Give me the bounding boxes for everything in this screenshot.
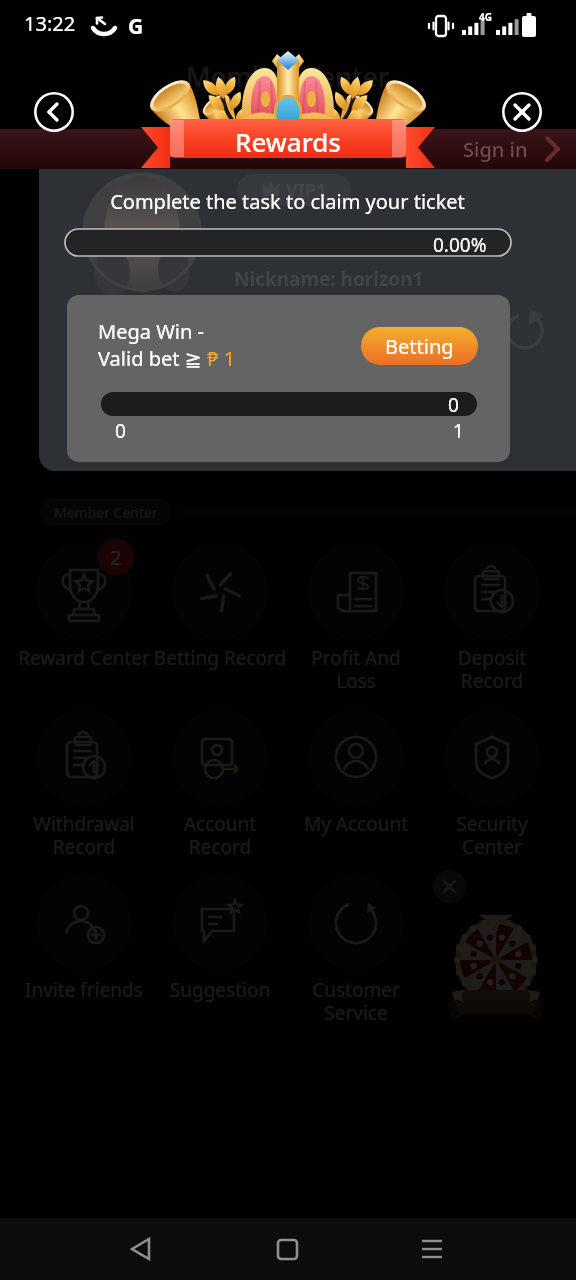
staticText: Invite friends	[16, 977, 152, 1003]
staticText: Customer Service	[288, 977, 424, 1026]
staticText: Mega Win -	[98, 318, 204, 345]
staticText: Reward Center	[16, 645, 152, 671]
staticText: Betting	[385, 333, 454, 360]
staticText: Withdrawal Record	[16, 811, 152, 860]
button[interactable]: Close	[502, 92, 542, 132]
button[interactable]: Withdrawal Record	[16, 709, 152, 861]
button[interactable]: Recent apps	[402, 1218, 576, 1280]
staticText: Member Center	[54, 503, 158, 522]
staticText: 0	[448, 392, 459, 416]
staticText: VIP1	[286, 178, 327, 203]
button[interactable]: Betting	[361, 327, 478, 365]
staticText: 2	[110, 544, 122, 571]
staticText: Valid bet ≧	[98, 345, 207, 372]
staticText: 0	[115, 418, 126, 444]
staticText: 1	[453, 418, 464, 444]
staticText: Complete the task to claim your ticket	[110, 188, 465, 215]
button[interactable]: Profit And Loss	[288, 543, 424, 695]
button[interactable]: Sign in	[0, 129, 576, 169]
button[interactable]: Customer Service	[288, 875, 424, 1027]
button[interactable]: Invite friends	[16, 875, 152, 1027]
staticText: Suggestion	[152, 977, 288, 1003]
staticText: Member Center	[186, 58, 390, 95]
button[interactable]: Home	[258, 1218, 576, 1280]
staticText: Security Center	[424, 811, 560, 860]
button[interactable]: Back	[113, 1218, 576, 1280]
staticText: G	[128, 12, 144, 41]
button[interactable]: Suggestion	[152, 875, 288, 1027]
staticText: ₱ 1	[207, 345, 236, 372]
button[interactable]: Betting Record	[152, 543, 288, 695]
button[interactable]: Lucky wheel	[450, 910, 546, 1022]
staticText: 4G	[479, 10, 492, 24]
button[interactable]: Deposit Record	[424, 543, 560, 695]
staticText: Betting Record	[152, 645, 288, 671]
button[interactable]: Back	[34, 92, 74, 132]
staticText: My Account	[288, 811, 424, 837]
staticText: Profit And Loss	[288, 645, 424, 694]
staticText: Rewards	[0, 124, 576, 159]
staticText: 13:22	[24, 10, 76, 37]
button[interactable]: Close wheel	[433, 870, 466, 903]
staticText: 0.00%	[433, 232, 487, 258]
button[interactable]: My Account	[288, 709, 424, 861]
staticText: Sign in	[463, 136, 528, 163]
staticText: Deposit Record	[424, 645, 560, 694]
button[interactable]: Account Record	[152, 709, 288, 861]
button[interactable]: VIP1	[237, 174, 351, 206]
button[interactable]: Security Center	[424, 709, 560, 861]
staticText: Nickname: horizon1	[234, 266, 424, 292]
staticText: Account Record	[152, 811, 288, 860]
button[interactable]: 2	[16, 543, 152, 695]
